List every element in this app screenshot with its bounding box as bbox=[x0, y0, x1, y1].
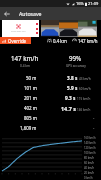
staticText: 160 km/h bbox=[84, 136, 96, 140]
staticText: 115 km/h bbox=[77, 97, 91, 101]
button[interactable] bbox=[78, 20, 97, 37]
staticText: 120 km/h bbox=[84, 146, 96, 150]
staticText: 40 km/h bbox=[84, 166, 95, 170]
staticText: 0 km/h bbox=[84, 176, 93, 180]
staticText: 140 km/h bbox=[84, 141, 96, 145]
staticText: GPS accuracy bbox=[66, 64, 86, 68]
staticText: 146 km/h bbox=[77, 108, 91, 112]
button[interactable]: 402 m bbox=[0, 103, 101, 113]
staticText: - bbox=[93, 125, 95, 131]
staticText: 147 km/h bbox=[78, 38, 98, 44]
staticText: Autosave bbox=[19, 10, 42, 17]
staticText: 3.8 s bbox=[67, 75, 78, 81]
staticText: 99% bbox=[69, 54, 82, 62]
button[interactable]: 147 km/h bbox=[0, 53, 50, 69]
button[interactable]: Back bbox=[0, 7, 14, 20]
staticText: 9.3 s bbox=[65, 95, 76, 101]
button[interactable]: 101 m bbox=[0, 83, 101, 93]
staticText: 43 km/h bbox=[79, 77, 91, 81]
staticText: 60 km/h bbox=[84, 161, 95, 165]
staticText: 80 km/h bbox=[84, 156, 95, 160]
button[interactable] bbox=[41, 20, 59, 37]
staticText: 16% bbox=[76, 1, 84, 6]
staticText: 0.4 km bbox=[53, 38, 67, 44]
staticText: 805 m bbox=[24, 115, 37, 121]
staticText: 147 km/h bbox=[11, 54, 39, 62]
button[interactable] bbox=[59, 20, 78, 37]
staticText: 50 m bbox=[26, 75, 37, 81]
button[interactable]: Override bbox=[0, 37, 31, 44]
staticText: 101 m bbox=[24, 85, 37, 91]
staticText: 201 m bbox=[24, 95, 37, 101]
staticText: 402 m bbox=[24, 105, 37, 111]
staticText: 21:09 bbox=[88, 1, 99, 6]
staticText: 60 km/h bbox=[79, 87, 91, 91]
button[interactable]: 99% bbox=[50, 53, 101, 69]
button[interactable]: 805 m bbox=[0, 113, 101, 123]
staticText: - bbox=[93, 115, 95, 121]
staticText: 5.9 s bbox=[67, 85, 78, 91]
staticText: Override bbox=[8, 38, 27, 44]
button[interactable]: 50 m bbox=[0, 73, 101, 83]
staticText: 1,609 m bbox=[20, 125, 37, 131]
button[interactable]: CLICK FOR YOU bbox=[2, 20, 39, 37]
staticText: 14.7 s bbox=[61, 105, 76, 112]
button[interactable]: 201 m bbox=[0, 93, 101, 103]
staticText: 20 km/h bbox=[84, 171, 95, 175]
staticText: 0.4 km bbox=[20, 64, 31, 68]
button[interactable]: 1,609 m bbox=[0, 123, 101, 133]
staticText: CLICK FOR YOU bbox=[11, 30, 26, 33]
staticText: 100 km/h bbox=[84, 151, 96, 155]
